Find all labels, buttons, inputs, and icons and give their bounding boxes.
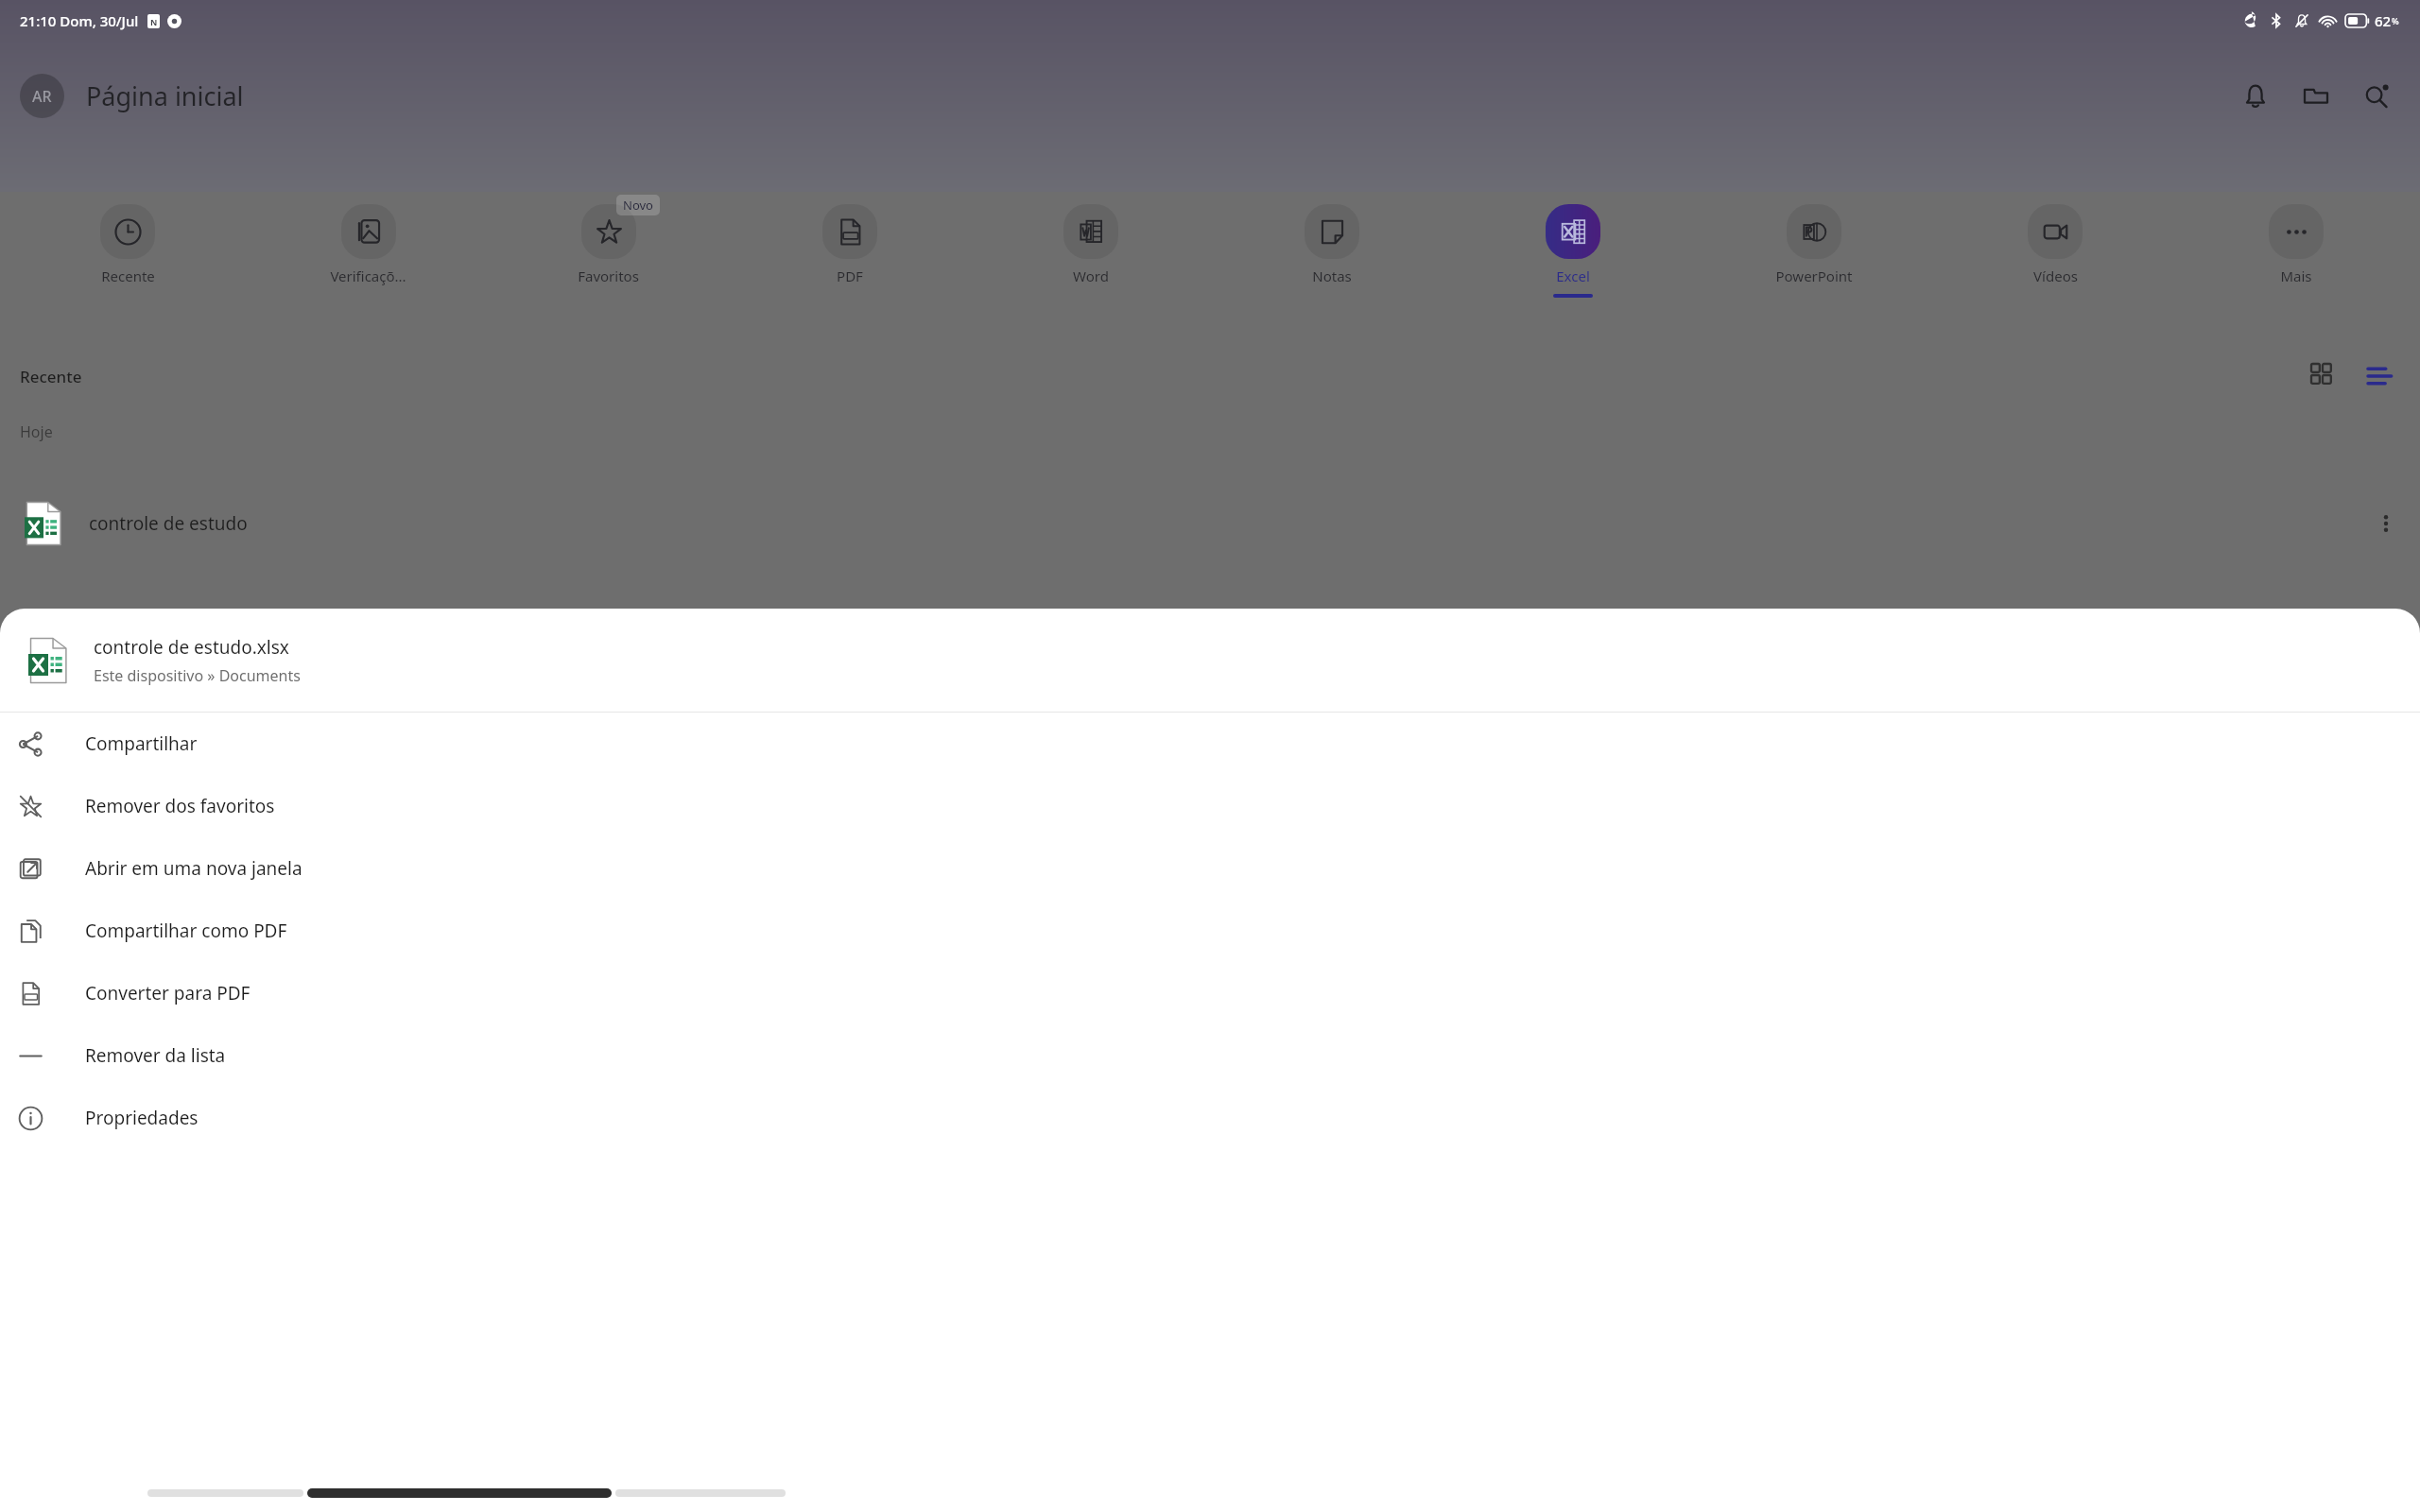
- staticText: Vídeos: [2033, 266, 2078, 285]
- staticText: Página inicial: [86, 78, 244, 113]
- button[interactable]: Converter para PDF: [0, 962, 2420, 1024]
- button[interactable]: Vídeos: [1934, 192, 2175, 343]
- button[interactable]: Visualização em lista: [2352, 348, 2409, 404]
- staticText: Word: [1073, 266, 1109, 285]
- staticText: Compartilhar: [85, 731, 198, 756]
- staticText: Compartilhar como PDF: [85, 919, 287, 943]
- staticText: %: [2392, 15, 2399, 26]
- button[interactable]: Visualização em grade: [2295, 348, 2352, 404]
- staticText: Verificaçõ...: [330, 266, 406, 285]
- staticText: Remover dos favoritos: [85, 794, 275, 818]
- button[interactable]: Remover da lista: [0, 1024, 2420, 1087]
- button[interactable]: PDF: [729, 192, 970, 343]
- staticText: Novo: [623, 197, 653, 214]
- staticText: Recente: [101, 266, 155, 285]
- staticText: Hoje: [20, 421, 53, 442]
- staticText: Abrir em uma nova janela: [85, 856, 302, 881]
- button[interactable]: Notas: [1211, 192, 1452, 343]
- button[interactable]: Conta: [20, 74, 64, 118]
- staticText: Recente: [20, 366, 82, 387]
- button[interactable]: controle de estudo: [0, 478, 2420, 569]
- staticText: controle de estudo: [89, 511, 248, 536]
- staticText: Notas: [1312, 266, 1352, 285]
- button[interactable]: Word: [970, 192, 1211, 343]
- button[interactable]: Recente: [8, 192, 248, 343]
- button[interactable]: Compartilhar como PDF: [0, 900, 2420, 962]
- button[interactable]: Remover dos favoritos: [0, 775, 2420, 837]
- button[interactable]: Compartilhar: [0, 713, 2420, 775]
- button[interactable]: Propriedades: [0, 1087, 2420, 1149]
- staticText: Propriedades: [85, 1106, 199, 1130]
- staticText: Mais: [2280, 266, 2312, 285]
- staticText: 21:10 Dom, 30/Jul: [20, 11, 139, 30]
- staticText: Converter para PDF: [85, 981, 251, 1005]
- button[interactable]: Novo: [488, 192, 729, 343]
- other: Mais opções: [2359, 497, 2412, 550]
- staticText: Excel: [1556, 266, 1590, 285]
- staticText: 62: [2375, 11, 2392, 30]
- staticText: PDF: [837, 266, 863, 285]
- staticText: PowerPoint: [1775, 266, 1853, 285]
- button[interactable]: Pesquisar: [2346, 66, 2407, 127]
- button[interactable]: Mais: [2175, 192, 2416, 343]
- button[interactable]: Notificações: [2225, 66, 2286, 127]
- button[interactable]: Verificaçõ...: [248, 192, 488, 343]
- button[interactable]: Pastas: [2286, 66, 2346, 127]
- button[interactable]: Excel: [1452, 192, 1693, 343]
- staticText: AR: [32, 86, 52, 107]
- staticText: Este dispositivo » Documents: [94, 665, 301, 686]
- staticText: Remover da lista: [85, 1043, 226, 1068]
- staticText: N: [150, 16, 158, 27]
- button[interactable]: Abrir em uma nova janela: [0, 837, 2420, 900]
- staticText: Favoritos: [578, 266, 639, 285]
- button[interactable]: PowerPoint: [1693, 192, 1934, 343]
- button[interactable]: controle de estudo.xlsx: [0, 609, 2420, 712]
- staticText: controle de estudo.xlsx: [94, 635, 289, 660]
